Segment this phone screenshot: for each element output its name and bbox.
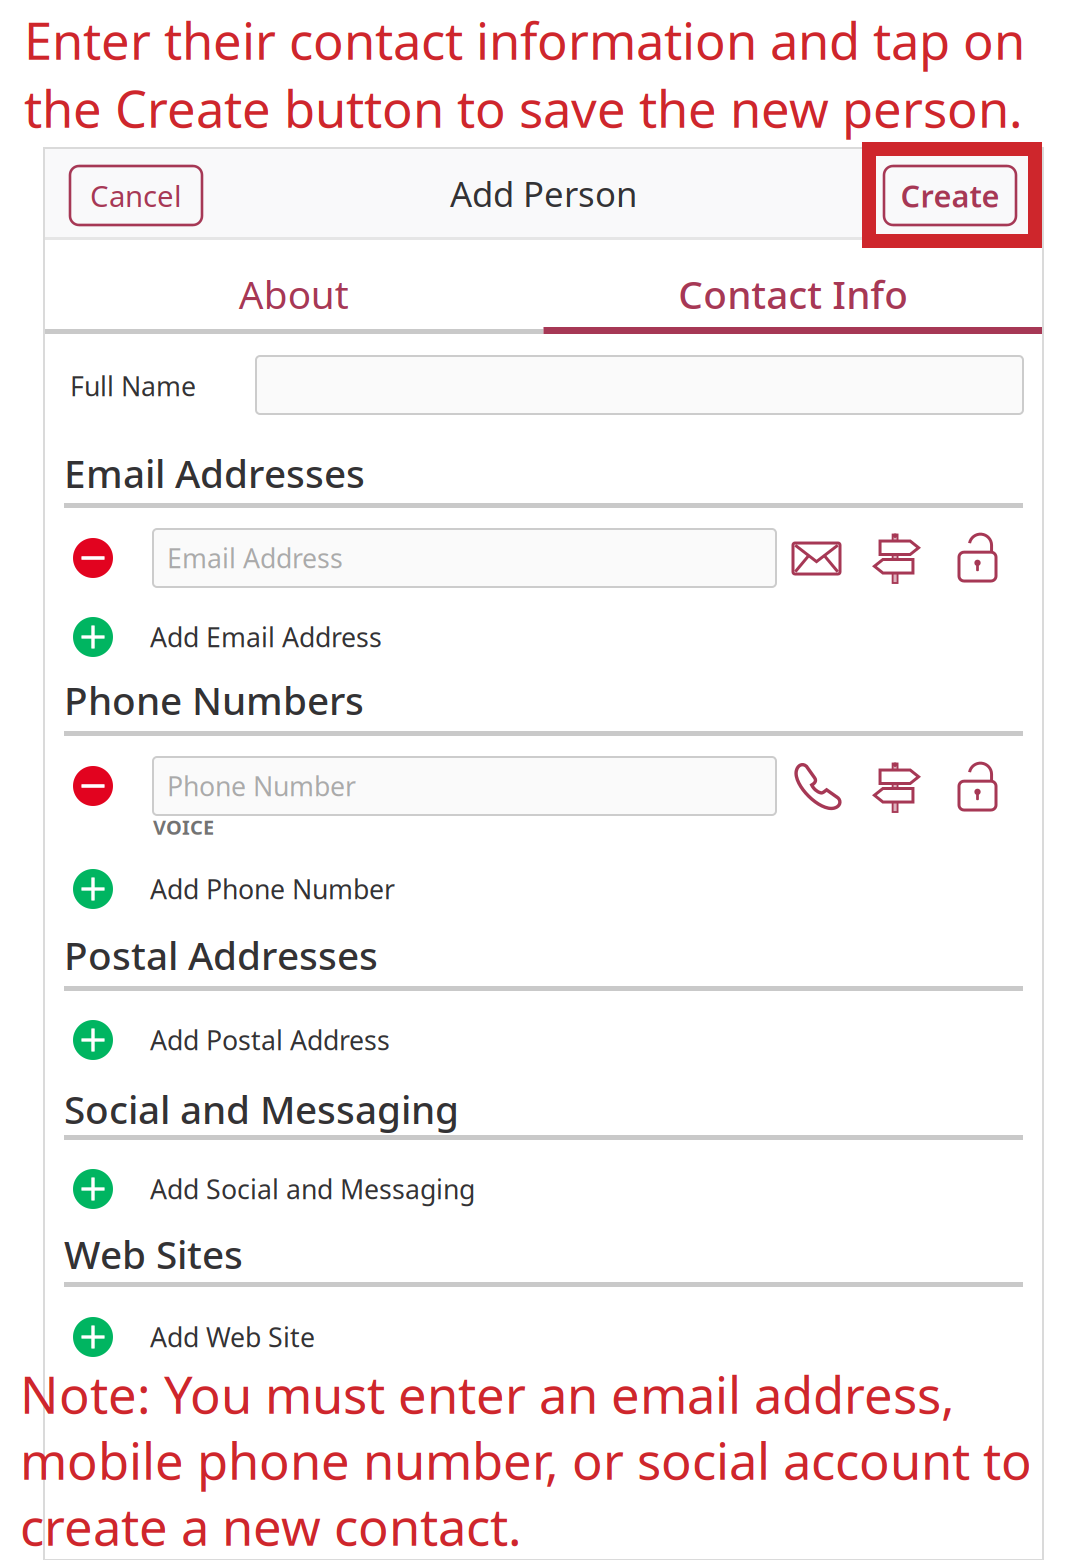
staticText: Cancel (90, 176, 182, 215)
button[interactable]: Text field (153, 529, 776, 587)
button[interactable]: Full Name (256, 356, 1023, 414)
staticText: Email Addresses (64, 447, 365, 499)
staticText: Full Name (70, 368, 196, 404)
staticText: Email Address (167, 540, 343, 576)
button[interactable]: Add Email Address (44, 148, 994, 204)
staticText: Create (900, 175, 999, 216)
staticText: Phone Numbers (64, 674, 364, 726)
button[interactable]: Add Web Site (44, 148, 994, 204)
staticText: Contact Info (678, 268, 908, 320)
staticText: Note: You must enter an email address, (20, 1360, 955, 1428)
button[interactable]: Create (884, 166, 1016, 225)
staticText: Add Person (450, 170, 637, 216)
button[interactable]: Phone type (793, 762, 841, 810)
button[interactable]: Email type (793, 543, 840, 574)
staticText: create a new contact. (20, 1492, 522, 1560)
button[interactable]: Cancel (70, 166, 202, 225)
staticText: Phone Number (167, 768, 356, 804)
button[interactable]: Privacy (959, 762, 996, 810)
staticText: Add Phone Number (150, 871, 395, 907)
staticText: About (239, 268, 349, 320)
staticText: Web Sites (64, 1228, 243, 1280)
staticText: the Create button to save the new person… (24, 74, 1023, 142)
button[interactable]: Privacy (959, 533, 996, 581)
button[interactable]: About (44, 241, 543, 335)
staticText: Add Social and Messaging (150, 1171, 475, 1207)
staticText: Add Email Address (150, 619, 382, 655)
button[interactable]: Remove phone number (73, 766, 113, 806)
staticText: Enter their contact information and tap … (24, 6, 1025, 74)
button[interactable]: Remove email address (73, 538, 113, 578)
staticText: Add Postal Address (150, 1022, 390, 1058)
staticText: Social and Messaging (64, 1083, 459, 1135)
button[interactable]: Directions (873, 762, 920, 812)
staticText: VOICE (153, 814, 214, 840)
button[interactable]: Directions (873, 533, 920, 583)
button[interactable]: Add Postal Address (44, 148, 994, 204)
button[interactable]: Add Phone Number (44, 148, 994, 204)
staticText: Postal Addresses (64, 929, 378, 981)
button[interactable]: Text field (153, 757, 776, 815)
button[interactable]: Contact Info (543, 241, 1043, 335)
staticText: Add Web Site (150, 1319, 315, 1355)
button[interactable]: Add Social and Messaging (44, 148, 994, 204)
staticText: mobile phone number, or social account t… (20, 1426, 1032, 1494)
